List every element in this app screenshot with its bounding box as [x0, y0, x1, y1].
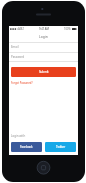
staticText: Twitter	[56, 145, 66, 149]
button[interactable]: Email	[9, 42, 78, 52]
staticText: Login with	[11, 134, 26, 138]
staticText: Submit	[39, 70, 49, 74]
button[interactable]: Facebook	[11, 142, 42, 152]
staticText: 9:41 AM	[39, 27, 49, 31]
staticText: Forgot Password?	[11, 81, 33, 85]
button[interactable]: Submit	[11, 67, 76, 77]
staticText: Email	[11, 45, 19, 49]
staticText: Login	[39, 34, 48, 39]
staticText: AT&T	[18, 27, 25, 31]
staticText: Password	[11, 55, 25, 59]
button[interactable]: Twitter	[45, 142, 76, 152]
button[interactable]: Password	[9, 52, 78, 61]
button[interactable]: Forgot Password?	[9, 81, 33, 85]
staticText: Facebook	[20, 145, 33, 149]
staticText: 100%	[64, 27, 71, 31]
